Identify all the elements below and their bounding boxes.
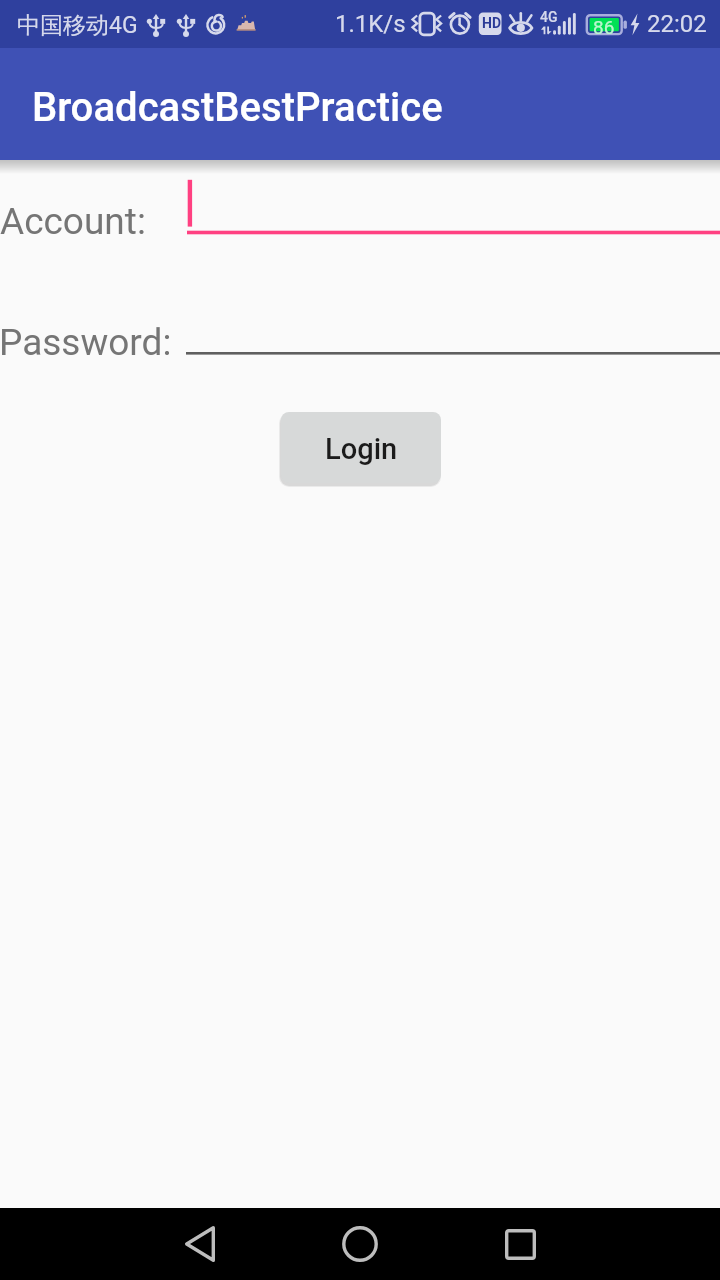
staticText: 4G [540,9,558,25]
button[interactable]: Password input field [186,300,720,360]
staticText: Account: [0,200,146,243]
button[interactable]: Account input field [187,179,720,237]
button[interactable]: Login [281,412,441,483]
staticText: 86 [593,16,615,38]
button[interactable]: Home [324,1208,396,1280]
staticText: 1.1K/s [335,10,406,38]
staticText: Login [325,432,398,466]
staticText: BroadcastBestPractice [32,84,443,131]
staticText: Password: [0,321,172,364]
button[interactable]: Back [164,1208,236,1280]
staticText: HD [482,15,502,31]
button[interactable]: Recents [484,1208,556,1280]
staticText: 中国移动4G [17,11,138,40]
staticText: 22:02 [647,10,707,38]
